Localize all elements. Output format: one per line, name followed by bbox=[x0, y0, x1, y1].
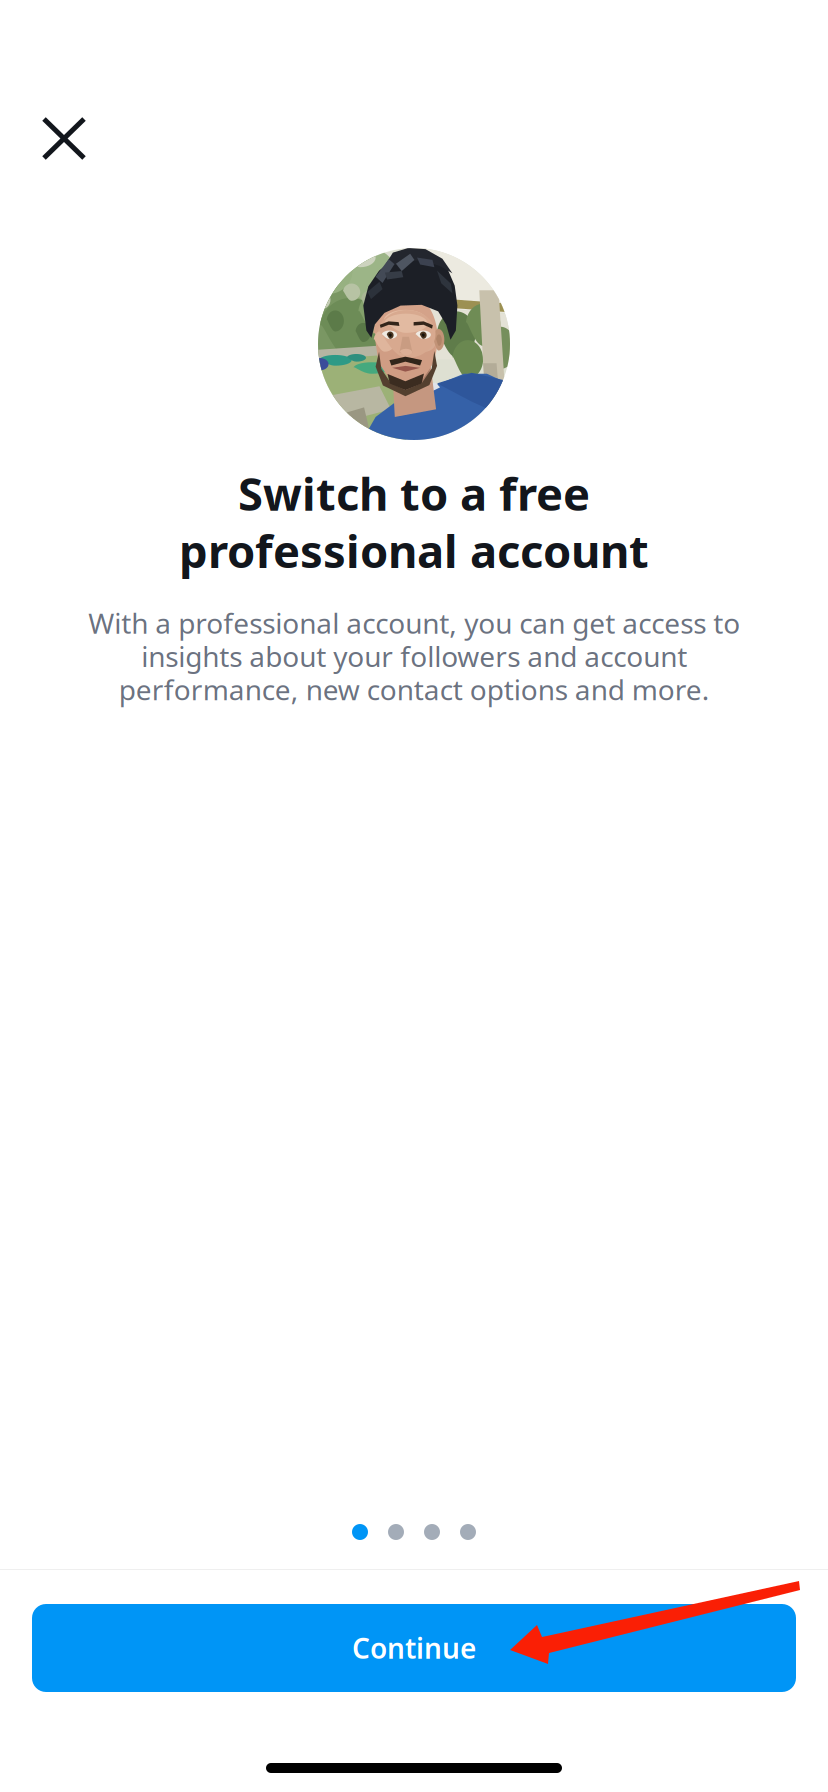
staticText: professional account bbox=[179, 520, 649, 580]
button[interactable]: Continue bbox=[32, 1604, 796, 1692]
staticText: With a professional account, you can get… bbox=[88, 604, 740, 708]
button[interactable]: Close bbox=[30, 105, 98, 172]
staticText: Continue bbox=[352, 1629, 476, 1667]
staticText: Switch to a free bbox=[238, 463, 590, 523]
